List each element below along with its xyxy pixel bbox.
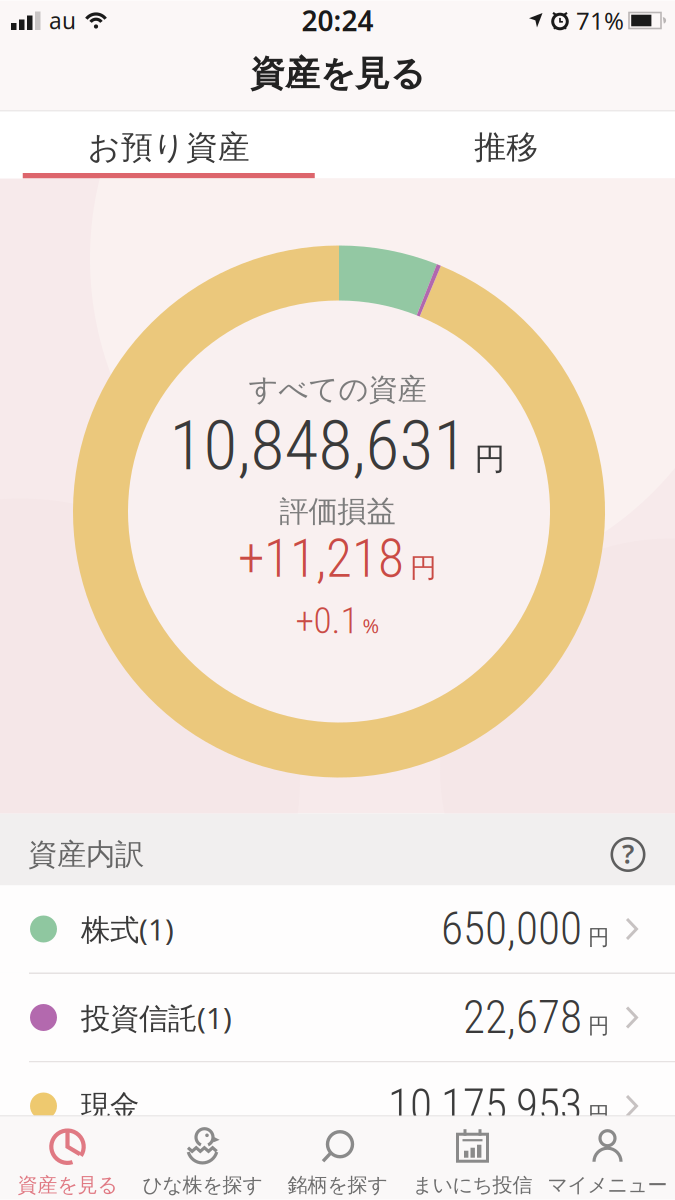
staticText: 評価損益 <box>279 493 395 529</box>
button[interactable]: 資産内訳ヘルプ <box>0 813 675 885</box>
staticText: 現金 <box>81 1088 139 1124</box>
staticText: 10,848,631 <box>169 405 467 486</box>
staticText: 円 <box>410 551 437 584</box>
button[interactable]: 銘柄を探す <box>270 1118 405 1198</box>
staticText: 資産内訳 <box>28 836 144 872</box>
staticText: au <box>49 5 76 35</box>
button[interactable]: 投資信託(1) <box>0 974 675 1061</box>
staticText: 銘柄を探す <box>287 1173 387 1197</box>
staticText: 推移 <box>474 128 538 167</box>
staticText: 円 <box>474 440 505 478</box>
staticText: マイメニュー <box>547 1173 667 1197</box>
button[interactable]: 現金 <box>0 1062 675 1149</box>
staticText: まいにち投信 <box>412 1173 532 1197</box>
button[interactable]: マイメニュー <box>540 1118 675 1198</box>
staticText: +0.1 <box>295 599 358 642</box>
staticText: 円 <box>588 1101 609 1127</box>
staticText: ? <box>622 836 634 871</box>
staticText: % <box>362 612 379 639</box>
staticText: 資産を見る <box>250 52 425 95</box>
staticText: 円 <box>588 1013 609 1039</box>
staticText: 22,678 <box>463 991 582 1044</box>
button[interactable]: ひな株を探す <box>135 1118 270 1198</box>
staticText: 資産を見る <box>17 1173 117 1197</box>
staticText: 10,175,953 <box>388 1079 582 1132</box>
button[interactable]: お預り資産 <box>0 111 337 178</box>
button[interactable]: 推移 <box>337 111 675 178</box>
staticText: 円 <box>588 924 609 950</box>
button[interactable]: まいにち投信 <box>405 1118 540 1198</box>
staticText: すべての資産 <box>248 371 426 407</box>
staticText: 投資信託(1) <box>81 998 232 1037</box>
staticText: お預り資産 <box>88 128 250 167</box>
staticText: ひな株を探す <box>142 1173 262 1197</box>
staticText: 株式(1) <box>81 909 174 948</box>
staticText: +11,218 <box>238 527 404 590</box>
staticText: 20:24 <box>301 2 373 39</box>
button[interactable]: 資産を見る <box>0 1118 135 1198</box>
button[interactable]: 株式(1) <box>0 885 675 972</box>
staticText: 71% <box>576 5 624 36</box>
staticText: 650,000 <box>441 902 582 955</box>
